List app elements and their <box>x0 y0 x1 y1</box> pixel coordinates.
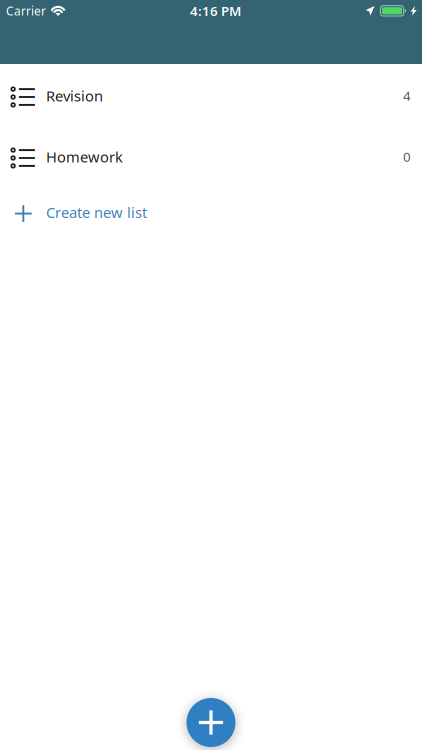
button[interactable]: Revision <box>0 66 422 127</box>
staticText: 0 <box>403 148 411 165</box>
staticText: Carrier <box>6 3 46 19</box>
button[interactable]: Create new list <box>0 188 422 239</box>
staticText: Revision <box>46 86 103 105</box>
staticText: Create new list <box>46 203 147 222</box>
button[interactable]: Add <box>186 698 235 747</box>
staticText: 4 <box>403 87 411 104</box>
staticText: Homework <box>46 147 123 166</box>
staticText: 4:16 PM <box>190 2 241 20</box>
button[interactable]: Homework <box>0 127 422 188</box>
